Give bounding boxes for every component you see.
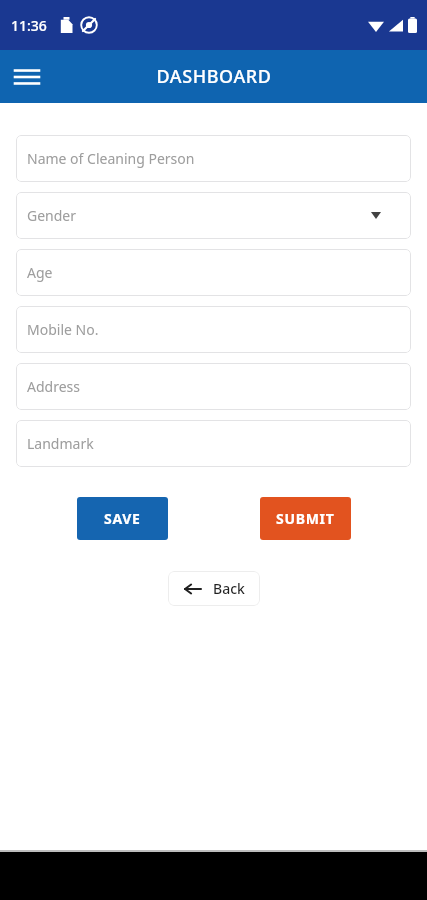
button[interactable]: Age [16, 249, 411, 296]
staticText: SAVE [104, 509, 141, 528]
staticText: DASHBOARD [156, 64, 272, 89]
staticText: 11:36 [11, 16, 47, 35]
staticText: Mobile No. [27, 320, 99, 339]
button[interactable]: SUBMIT [260, 497, 351, 540]
button[interactable]: SAVE [77, 497, 168, 540]
staticText: Back [213, 579, 245, 598]
staticText: Gender [27, 206, 77, 225]
button[interactable]: Open navigation menu [6, 56, 48, 98]
button[interactable]: Address [16, 363, 411, 410]
button[interactable]: Mobile No. [16, 306, 411, 353]
staticText: SUBMIT [276, 509, 335, 528]
button[interactable]: Name of Cleaning Person [16, 135, 411, 182]
staticText: Address [27, 377, 80, 396]
staticText: Landmark [27, 434, 94, 453]
staticText: Age [27, 263, 53, 282]
staticText: Name of Cleaning Person [27, 149, 195, 168]
button[interactable]: Gender [16, 192, 411, 239]
button[interactable]: Landmark [16, 420, 411, 467]
button[interactable]: Back [168, 571, 260, 606]
